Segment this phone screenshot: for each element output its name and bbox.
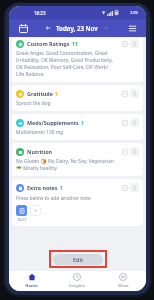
- staticText: 23%: [130, 10, 139, 16]
- button[interactable]: Collapse: [120, 118, 129, 127]
- staticText: Nutrition: [27, 148, 53, 155]
- button[interactable]: More: [100, 271, 146, 291]
- button[interactable]: Nutrition: [12, 143, 143, 176]
- staticText: Great Anger, Good Concentration, Great: [16, 50, 108, 57]
- button[interactable]: Share: [130, 39, 139, 48]
- button[interactable]: Share: [130, 147, 139, 156]
- button[interactable]: Extra notes: [12, 179, 143, 226]
- staticText: 1: [60, 184, 63, 191]
- button[interactable]: Menu: [124, 20, 140, 36]
- staticText: OK Relaxation, Poor Self-Care, OK Work/: [16, 64, 109, 71]
- button[interactable]: Collapse: [120, 147, 129, 156]
- staticText: 11: [72, 40, 78, 47]
- staticText: Sprout the dog: [16, 100, 51, 107]
- staticText: Home: [25, 283, 38, 289]
- button[interactable]: Share: [130, 89, 139, 98]
- staticText: Edit: [73, 256, 84, 263]
- staticText: Irritability, OK Memory, Good Productivi…: [16, 57, 113, 64]
- staticText: 🥗 Mostly healthy: [16, 165, 57, 172]
- staticText: Insights: [69, 283, 85, 289]
- button[interactable]: Previous day: [42, 22, 54, 34]
- button[interactable]: Edit: [53, 254, 103, 265]
- staticText: 18:23: [34, 10, 46, 16]
- staticText: Press below to add another note: [16, 195, 91, 202]
- button[interactable]: Gratitude: [12, 85, 143, 111]
- button[interactable]: Meds/Supplements: [12, 114, 143, 140]
- button[interactable]: Collapse: [120, 183, 129, 192]
- button[interactable]: Next day: [100, 22, 112, 34]
- staticText: 1: [81, 119, 84, 126]
- button[interactable]: Add note: [30, 205, 41, 216]
- staticText: Extra notes: [27, 184, 58, 191]
- staticText: More: [118, 283, 129, 289]
- staticText: Meds/Supplements: [27, 119, 79, 126]
- button[interactable]: Collapse: [120, 89, 129, 98]
- button[interactable]: Calendar: [15, 20, 31, 36]
- staticText: Custom Ratings: [27, 40, 70, 47]
- staticText: 1: [55, 90, 58, 97]
- button[interactable]: Share: [130, 118, 139, 127]
- button[interactable]: Open note: [16, 205, 27, 216]
- staticText: Life Balance: [16, 71, 44, 78]
- staticText: Gratitude: [27, 90, 53, 97]
- button[interactable]: Today, 23 Nov: [56, 24, 98, 32]
- button[interactable]: Custom Ratings: [12, 38, 143, 82]
- staticText: 18:23: [17, 217, 27, 222]
- button[interactable]: Share: [130, 183, 139, 192]
- button[interactable]: Insights: [54, 271, 100, 291]
- staticText: No Gluten 🍞 No Dairy, No Soy, Vegetarian: [16, 158, 114, 165]
- button[interactable]: Collapse: [120, 39, 129, 48]
- staticText: Multivitamin 100 mg: [16, 129, 64, 136]
- button[interactable]: Home: [9, 271, 54, 291]
